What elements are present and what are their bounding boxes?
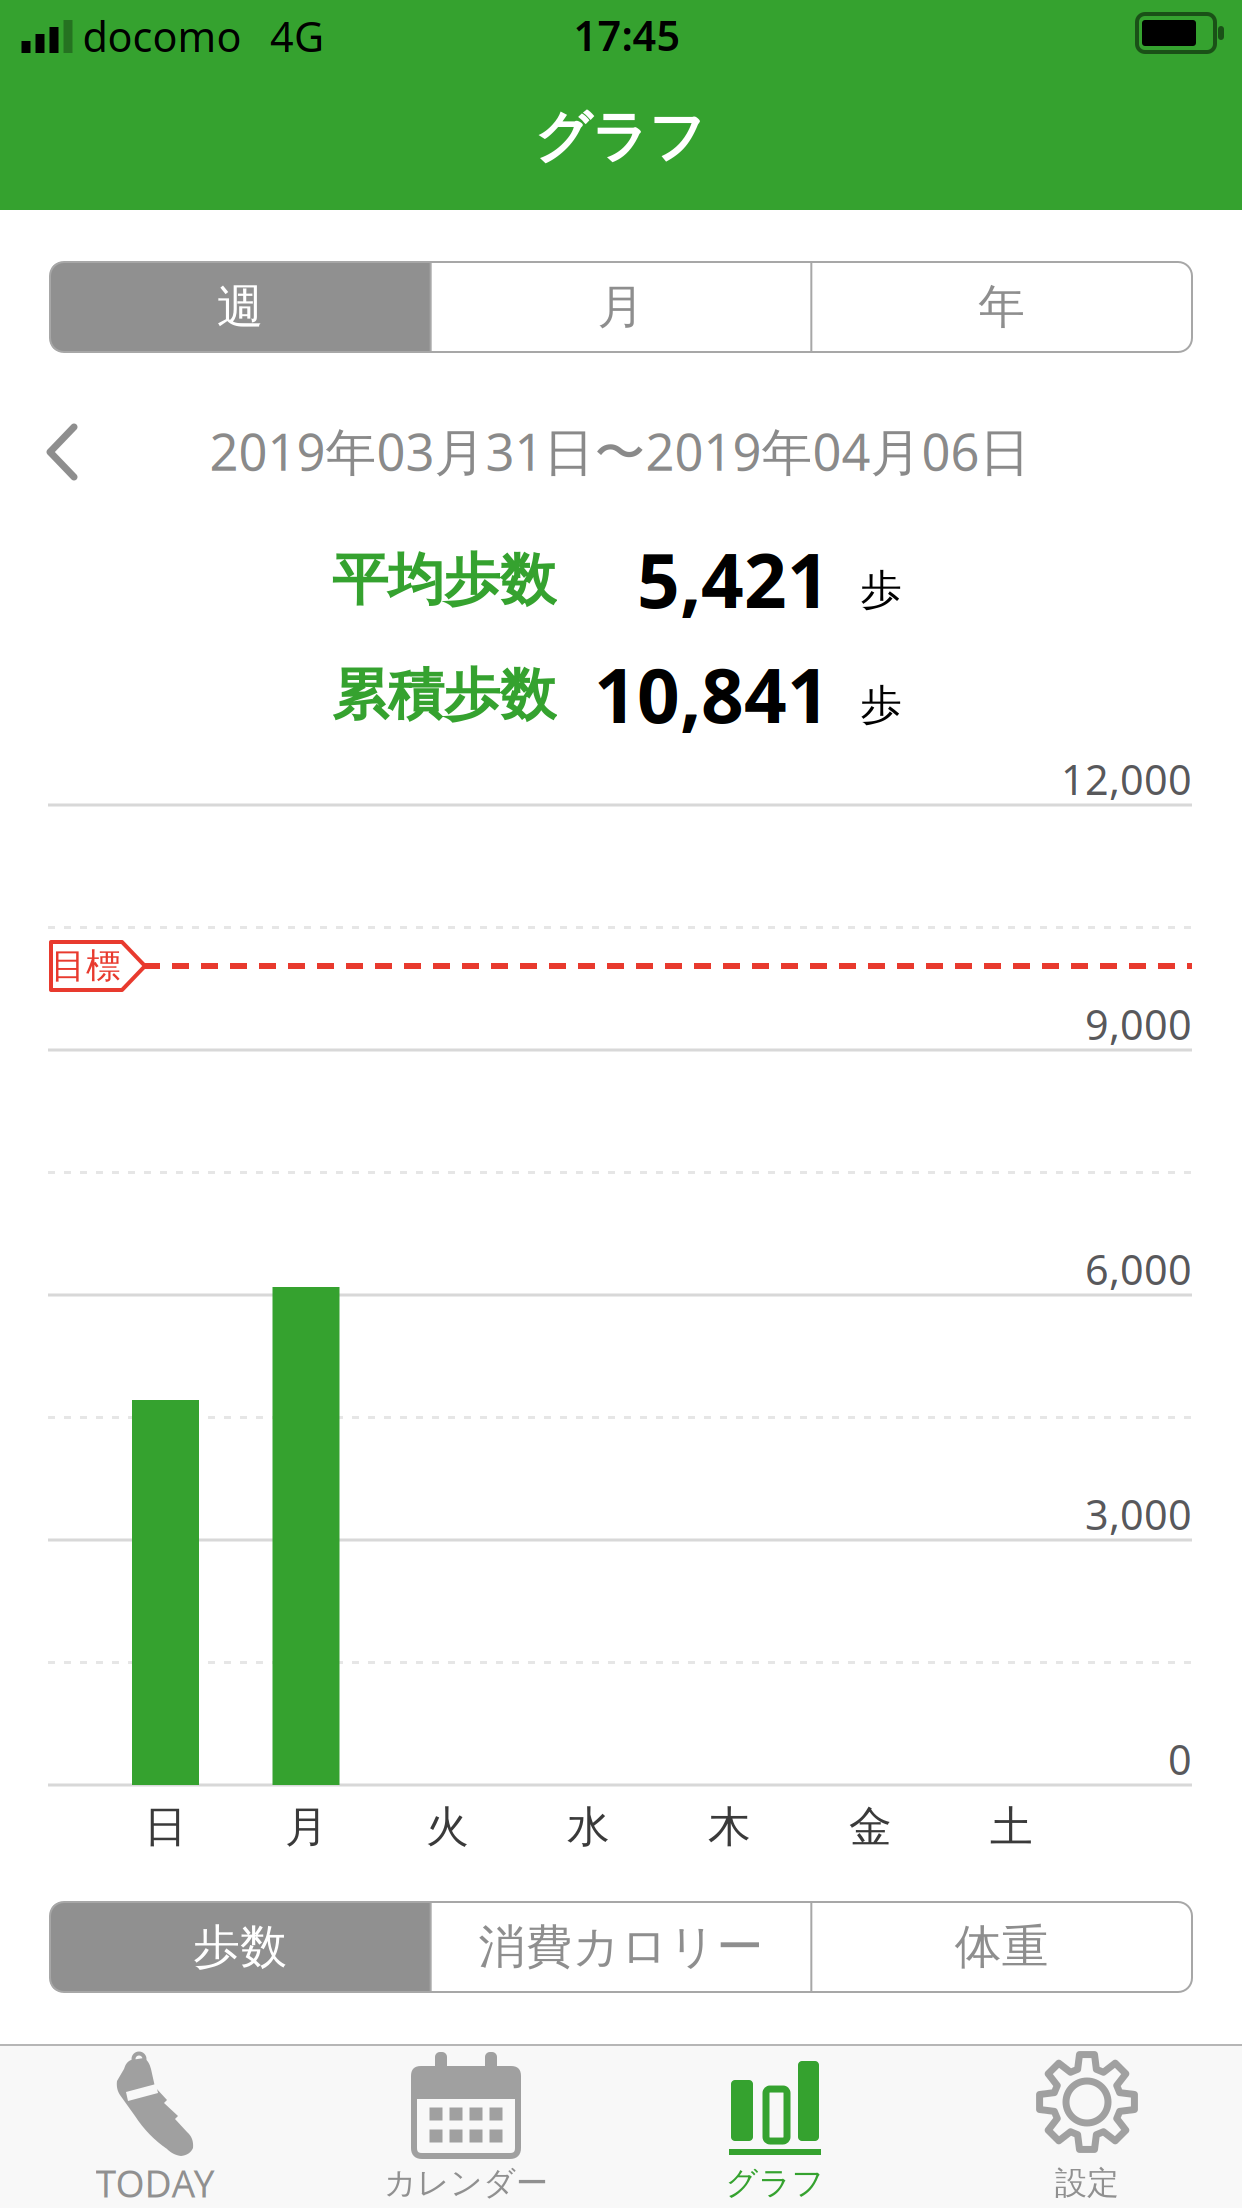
button[interactable]: 年 [811, 262, 1192, 352]
button[interactable]: 前の週 [46, 425, 78, 479]
staticText: 目標 [51, 945, 121, 987]
button[interactable]: 設定 [942, 2046, 1232, 2206]
staticText: 10,841 [594, 644, 830, 744]
staticText: 2019年03月31日〜2019年04月06日 [209, 417, 1030, 485]
staticText: 金 [849, 1801, 892, 1853]
staticText: 体重 [955, 1918, 1049, 1976]
staticText: グラフ [725, 2163, 824, 2203]
staticText: 6,000 [1085, 1242, 1192, 1296]
staticText: 火 [426, 1801, 469, 1853]
staticText: docomo [82, 9, 241, 63]
staticText: 消費カロリー [478, 1918, 763, 1976]
button[interactable]: カレンダー [321, 2046, 611, 2206]
staticText: 9,000 [1085, 997, 1192, 1051]
staticText: 歩 [860, 680, 901, 730]
staticText: 設定 [1055, 2163, 1119, 2203]
staticText: 月 [285, 1801, 328, 1853]
staticText: 0 [1168, 1732, 1192, 1786]
staticText: 週 [217, 278, 264, 336]
staticText: TODAY [95, 2158, 214, 2208]
staticText: 水 [567, 1801, 610, 1853]
button[interactable]: 月 [431, 262, 811, 352]
staticText: 年 [978, 278, 1025, 336]
staticText: 17:45 [573, 8, 680, 62]
button[interactable]: TODAY [10, 2046, 300, 2206]
button[interactable]: グラフ [630, 2046, 920, 2206]
staticText: 平均歩数 [332, 546, 556, 614]
staticText: 月 [597, 278, 644, 336]
staticText: 3,000 [1085, 1487, 1192, 1541]
staticText: 木 [708, 1801, 751, 1853]
button[interactable]: 歩数 [50, 1902, 431, 1992]
staticText: グラフ [534, 103, 705, 171]
staticText: 4G [270, 9, 324, 63]
staticText: 歩 [860, 565, 901, 615]
staticText: 歩数 [193, 1918, 287, 1976]
staticText: 累積歩数 [332, 661, 556, 729]
button[interactable]: 体重 [811, 1902, 1192, 1992]
staticText: 土 [990, 1801, 1033, 1853]
button[interactable]: 週 [50, 262, 431, 352]
staticText: 5,421 [637, 529, 830, 629]
button[interactable]: 消費カロリー [431, 1902, 811, 1992]
staticText: 日 [144, 1801, 187, 1853]
staticText: カレンダー [384, 2163, 548, 2203]
staticText: 12,000 [1061, 752, 1192, 806]
